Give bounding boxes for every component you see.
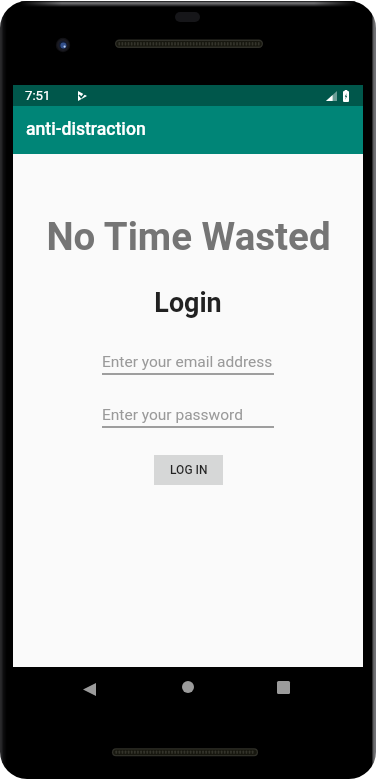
staticText: anti-distraction (26, 119, 146, 140)
button[interactable]: LOG IN (154, 455, 223, 485)
staticText: Login (154, 287, 222, 319)
button[interactable]: Recents (265, 667, 302, 707)
staticText: LOG IN (170, 463, 208, 477)
staticText: No Time Wasted (46, 214, 331, 259)
staticText: Enter your email address (102, 353, 273, 371)
staticText: Enter your password (102, 406, 243, 424)
button[interactable]: Enter your password (102, 406, 274, 428)
button[interactable]: Back (71, 669, 108, 709)
staticText: 7:51 (25, 88, 51, 103)
button[interactable]: Home (169, 667, 206, 707)
button[interactable]: Enter your email address (102, 353, 274, 375)
